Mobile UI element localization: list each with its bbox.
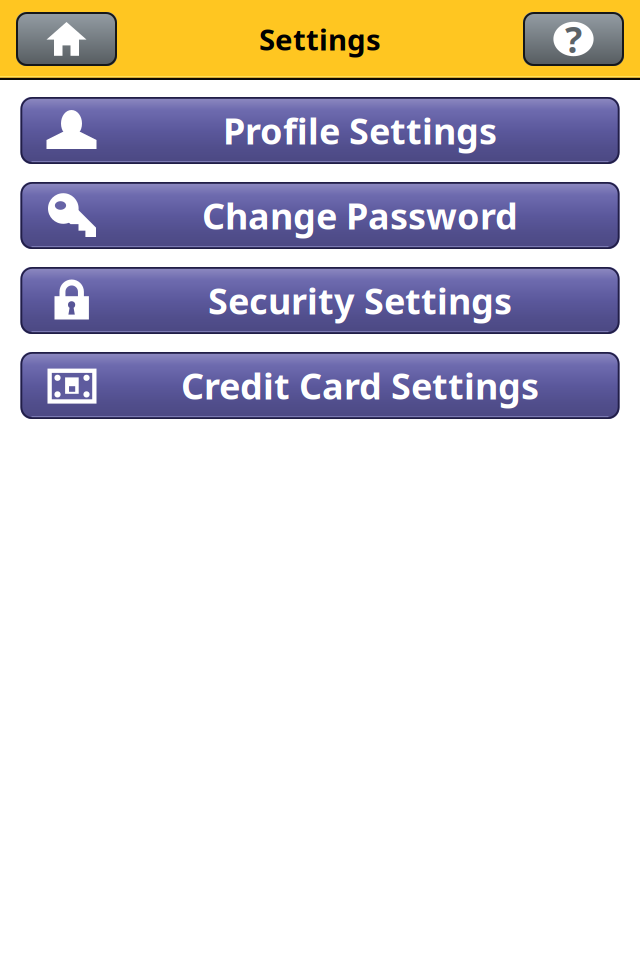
- button[interactable]: Security Settings: [20, 267, 619, 334]
- button[interactable]: Home: [16, 12, 117, 66]
- staticText: ?: [565, 15, 582, 63]
- staticText: Change Password: [202, 192, 518, 239]
- staticText: Settings: [259, 19, 381, 58]
- button[interactable]: Profile Settings: [20, 97, 619, 164]
- button[interactable]: Help: [523, 12, 624, 66]
- button[interactable]: Change Password: [20, 182, 619, 249]
- staticText: Profile Settings: [223, 107, 497, 154]
- staticText: Credit Card Settings: [181, 362, 539, 409]
- staticText: Security Settings: [208, 277, 512, 324]
- button[interactable]: Credit Card Settings: [20, 352, 619, 419]
